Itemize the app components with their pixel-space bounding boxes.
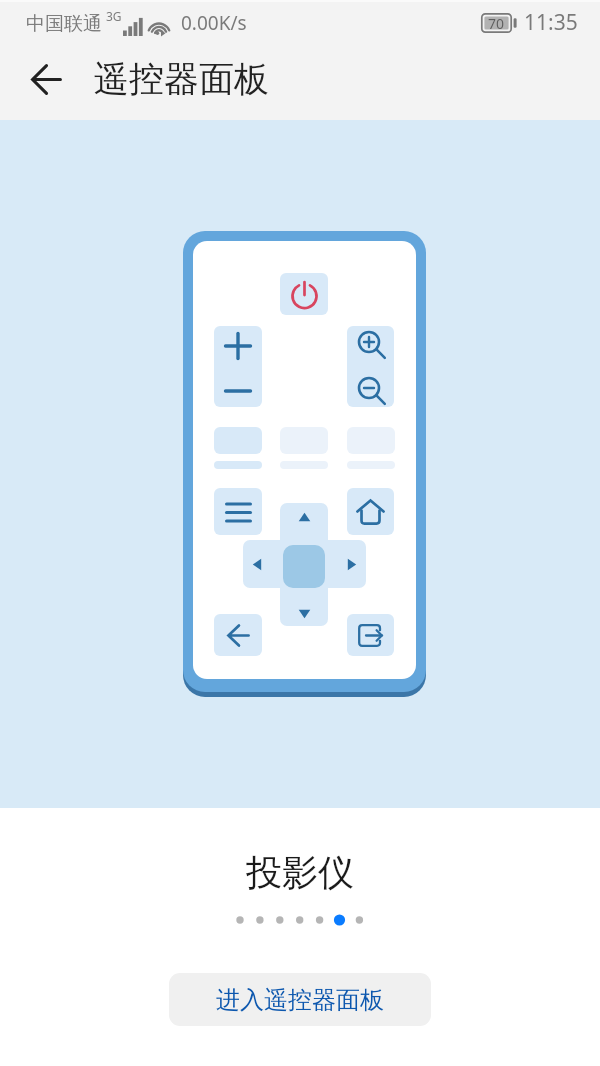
staticText: 中国联通	[26, 12, 102, 36]
button[interactable]: Home	[347, 488, 394, 535]
button[interactable]: OK	[283, 545, 325, 588]
staticText: 0.00K/s	[181, 10, 247, 36]
staticText: 70	[488, 14, 505, 33]
button[interactable]: Back	[214, 614, 262, 656]
button[interactable]: Exit	[347, 614, 394, 656]
button[interactable]: Volume	[214, 326, 262, 407]
staticText: 进入遥控器面板	[216, 985, 384, 1015]
staticText: 遥控器面板	[94, 57, 269, 101]
staticText: 11:35	[524, 8, 578, 37]
button[interactable]: Zoom	[347, 326, 394, 407]
button[interactable]: Shortcut	[214, 427, 262, 454]
button[interactable]: 进入遥控器面板	[169, 973, 431, 1026]
button[interactable]: Back	[16, 41, 77, 117]
button[interactable]: Power	[280, 273, 328, 315]
button[interactable]: Menu	[214, 488, 262, 535]
staticText: 3G	[106, 8, 122, 24]
staticText: 投影仪	[0, 850, 600, 895]
